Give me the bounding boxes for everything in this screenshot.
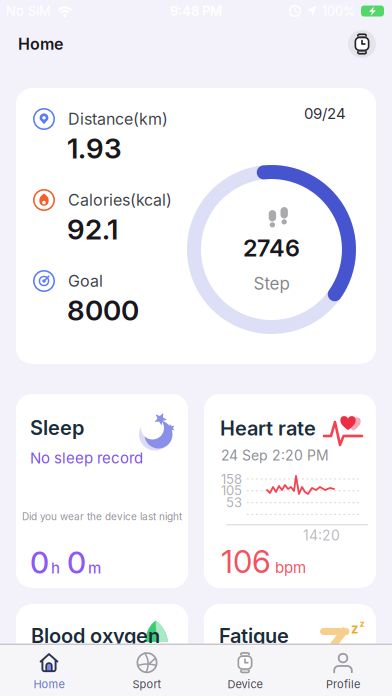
staticText: Device — [227, 678, 262, 691]
staticText: Profile — [326, 678, 360, 691]
staticText: h — [51, 559, 60, 577]
staticText: Distance(km) — [68, 109, 168, 129]
button[interactable]: 09/24 — [16, 88, 376, 364]
staticText: m — [88, 559, 101, 577]
button[interactable]: Sleep — [16, 394, 188, 588]
staticText: 24 Sep 2:20 PM — [221, 447, 329, 464]
staticText: 158 — [221, 471, 242, 487]
staticText: Sleep — [30, 415, 84, 440]
button[interactable]: Profile — [294, 652, 392, 691]
button[interactable]: Blood oxygen — [16, 604, 188, 696]
staticText: 09/24 — [304, 104, 346, 122]
button[interactable]: Heart rate — [204, 394, 376, 588]
staticText: 100% — [322, 3, 356, 19]
staticText: Goal — [68, 271, 103, 291]
staticText: Heart rate — [220, 416, 316, 440]
staticText: Fatigue — [219, 623, 289, 648]
staticText: 106 — [221, 543, 271, 580]
staticText: 0 — [67, 544, 86, 581]
staticText: 92.1 — [67, 212, 118, 246]
staticText: 8000 — [67, 293, 139, 327]
staticText: Sport — [132, 678, 161, 691]
button[interactable]: z — [204, 604, 376, 696]
staticText: Blood oxygen — [31, 623, 160, 648]
staticText: No SIM — [6, 3, 51, 19]
staticText: 9:48 PM — [170, 3, 222, 19]
staticText: bpm — [275, 558, 306, 577]
staticText: Step — [253, 273, 289, 294]
staticText: 14:20 — [303, 527, 340, 544]
staticText: 2746 — [243, 234, 300, 262]
staticText: 0 — [30, 544, 49, 581]
button[interactable]: Home — [0, 652, 98, 691]
button[interactable]: Sport — [98, 652, 196, 691]
staticText: Home — [18, 34, 63, 54]
staticText: Calories(kcal) — [68, 190, 172, 210]
button[interactable]: Connect watch — [348, 30, 376, 58]
staticText: z — [359, 618, 364, 629]
staticText: z — [351, 621, 358, 637]
button[interactable]: Device — [196, 652, 294, 691]
staticText: No sleep record — [30, 449, 143, 467]
staticText: 105 — [221, 483, 242, 498]
staticText: 1.93 — [67, 131, 122, 165]
staticText: Home — [33, 678, 64, 691]
staticText: 53 — [226, 495, 242, 510]
staticText: Did you wear the device last night — [22, 511, 182, 523]
